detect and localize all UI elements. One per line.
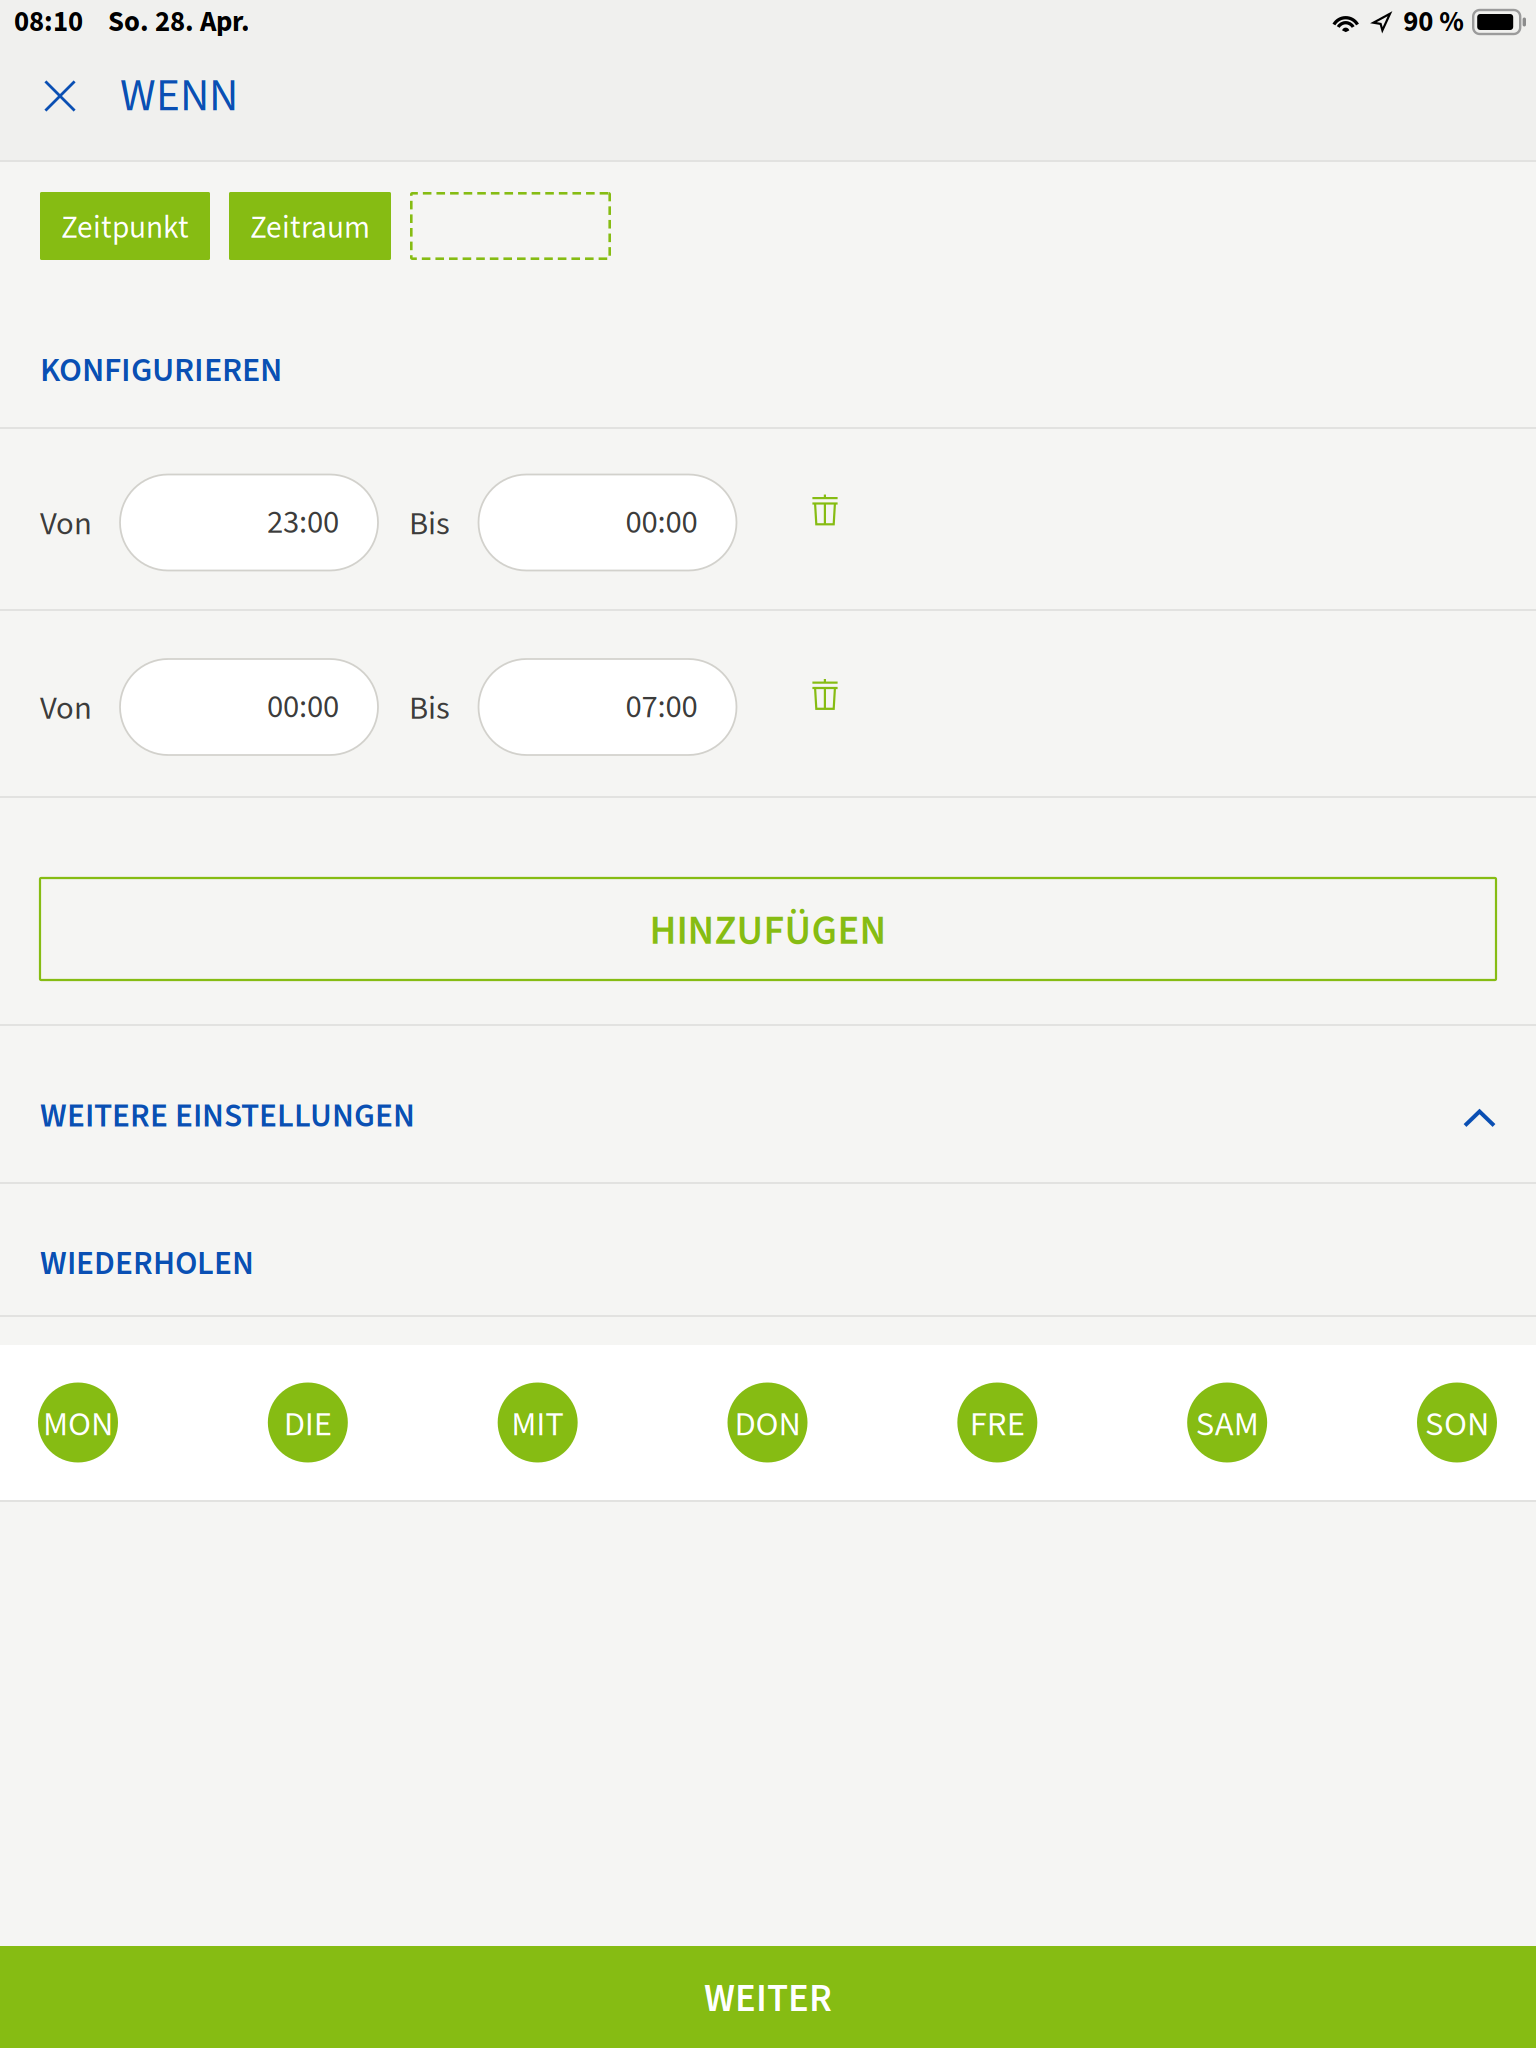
staticText: HINZUFÜGEN [649, 902, 886, 960]
staticText: MON [43, 1400, 113, 1449]
button[interactable]: SAM [1187, 1382, 1267, 1462]
staticText: MIT [511, 1400, 564, 1449]
button[interactable]: 00:00 [478, 467, 736, 570]
button[interactable]: DIE [268, 1382, 348, 1462]
staticText: SAM [1196, 1400, 1259, 1449]
staticText: Bis [409, 501, 450, 547]
staticText: WEITERE EINSTELLUNGEN [40, 1092, 415, 1140]
button[interactable]: DON [727, 1382, 807, 1462]
button[interactable]: FRE [957, 1382, 1037, 1462]
staticText: Von [40, 501, 92, 547]
button[interactable]: WENN [98, 66, 252, 138]
staticText: FRE [970, 1400, 1025, 1449]
button[interactable]: 23:00 [120, 467, 378, 570]
button[interactable]: Zeitraum [229, 192, 391, 260]
staticText: Von [40, 685, 92, 732]
staticText: So. 28. Apr. [108, 2, 250, 42]
staticText: WEITER [704, 1971, 832, 2027]
staticText: 00:00 [625, 499, 697, 546]
button[interactable]: Schließen [22, 66, 98, 138]
button[interactable]: WEITERE EINSTELLUNGEN [0, 1026, 1536, 1182]
staticText: DON [734, 1400, 800, 1449]
staticText: Bis [409, 685, 450, 732]
button[interactable]: MON [38, 1382, 118, 1462]
button[interactable]: WEITER [0, 1946, 1536, 2048]
staticText: WIEDERHOLEN [40, 1240, 254, 1287]
staticText: 00:00 [267, 684, 339, 730]
staticText: 90 % [1403, 2, 1464, 42]
staticText: SON [1425, 1400, 1489, 1449]
button[interactable]: 07:00 [478, 652, 736, 755]
button[interactable]: Zeitraum löschen [777, 461, 873, 557]
button[interactable]: Zeitpunkt [40, 192, 210, 260]
staticText: 08:10 [14, 2, 83, 42]
button[interactable]: Zeitraum löschen [777, 646, 873, 742]
button[interactable]: MIT [498, 1382, 578, 1462]
button[interactable]: SON [1417, 1382, 1497, 1462]
staticText: KONFIGURIEREN [40, 346, 282, 395]
button[interactable]: HINZUFÜGEN [40, 878, 1496, 980]
staticText: WENN [120, 64, 238, 128]
button[interactable]: 00:00 [120, 652, 378, 755]
staticText: 23:00 [267, 499, 339, 546]
staticText: Zeitraum [250, 206, 370, 250]
staticText: Zeitpunkt [61, 206, 189, 250]
staticText: DIE [284, 1400, 332, 1449]
staticText: 07:00 [625, 684, 697, 730]
